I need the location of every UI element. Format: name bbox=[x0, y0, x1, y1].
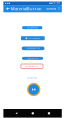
staticText: TEXT BUTTON bbox=[27, 77, 37, 79]
button[interactable]: ROUNDED BUTTON bbox=[22, 46, 44, 50]
staticText: 9:30 bbox=[53, 1, 60, 5]
staticText: ROUNDED BUTTON bbox=[27, 47, 40, 49]
staticText: OUTLINED BUTTON bbox=[25, 65, 38, 67]
staticText: SMALL BUTTON bbox=[27, 57, 38, 59]
button[interactable]: OUTLINED BUTTON bbox=[21, 64, 43, 68]
button[interactable]: Extended floating action button bbox=[27, 83, 40, 96]
staticText: BUTTON WITH ICON bbox=[28, 37, 40, 39]
button[interactable]: GITHUB bbox=[46, 7, 57, 10]
button[interactable]: SMALL BUTTON bbox=[22, 57, 43, 60]
staticText: FILLED BUTTON bbox=[27, 27, 38, 29]
staticText: MaterialButton bbox=[11, 6, 42, 11]
button[interactable]: Back bbox=[13, 110, 20, 117]
staticText: GITHUB bbox=[46, 7, 56, 10]
button[interactable]: More options bbox=[57, 5, 61, 12]
button[interactable]: FILLED BUTTON bbox=[22, 26, 42, 29]
button[interactable]: BUTTON WITH ICON bbox=[21, 36, 45, 40]
button[interactable]: Navigate up bbox=[5, 5, 11, 12]
button[interactable]: Recent apps bbox=[46, 110, 52, 117]
button[interactable]: TEXT BUTTON bbox=[24, 76, 39, 79]
button[interactable]: Home bbox=[29, 110, 36, 117]
